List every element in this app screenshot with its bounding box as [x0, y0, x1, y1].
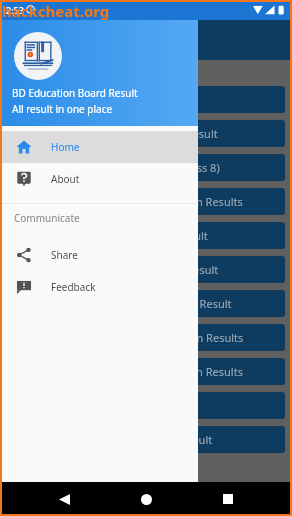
button[interactable]: Dakhil Result: [8, 256, 285, 283]
staticText: 2:53: [6, 4, 24, 16]
button[interactable]: Honours Result: [8, 392, 285, 419]
button[interactable]: JSC / JDC Result (Class 8): [8, 154, 285, 181]
staticText: SSC / Dakhil Result: [70, 92, 167, 107]
button[interactable]: Home: [128, 482, 164, 516]
button[interactable]: Home: [0, 131, 198, 163]
staticText: BD Education Board Result: [12, 86, 138, 100]
staticText: All result in one place: [12, 102, 113, 116]
staticText: Share: [51, 248, 78, 262]
button[interactable]: Diploma Examination Results: [8, 358, 285, 385]
staticText: About: [51, 172, 80, 186]
button[interactable]: PSC / Ebtedayee Exam Results: [8, 188, 285, 215]
button[interactable]: SSC / Dakhil Result: [8, 86, 285, 113]
staticText: Masters Result: [136, 432, 213, 447]
staticText: Home: [51, 140, 80, 154]
staticText: JSC / JDC Result (Class 8): [96, 160, 220, 175]
button[interactable]: Recent apps: [210, 482, 246, 516]
staticText: Kamil Examination Results: [107, 330, 244, 345]
button[interactable]: Fazil Result: [8, 290, 285, 317]
staticText: Communicate: [14, 211, 80, 225]
staticText: Diploma Examination Results: [92, 364, 243, 379]
button[interactable]: Share: [0, 239, 198, 271]
button[interactable]: Kamil Examination Results: [8, 324, 285, 351]
staticText: Alim Result: [150, 228, 208, 243]
staticText: hackcheat.org: [2, 1, 110, 21]
staticText: Fazil Result: [174, 296, 232, 311]
button[interactable]: Alim Result: [8, 222, 285, 249]
staticText: Feedback: [51, 280, 96, 294]
button[interactable]: About: [0, 163, 198, 195]
staticText: HSC / Alim Result: [129, 126, 218, 141]
staticText: PSC / Ebtedayee Exam Results: [88, 194, 243, 209]
button[interactable]: HSC / Alim Result: [8, 120, 285, 147]
button[interactable]: Back: [46, 482, 82, 516]
button[interactable]: Masters Result: [8, 426, 285, 453]
button[interactable]: Feedback: [0, 271, 198, 303]
staticText: Dakhil Result: [151, 262, 219, 277]
